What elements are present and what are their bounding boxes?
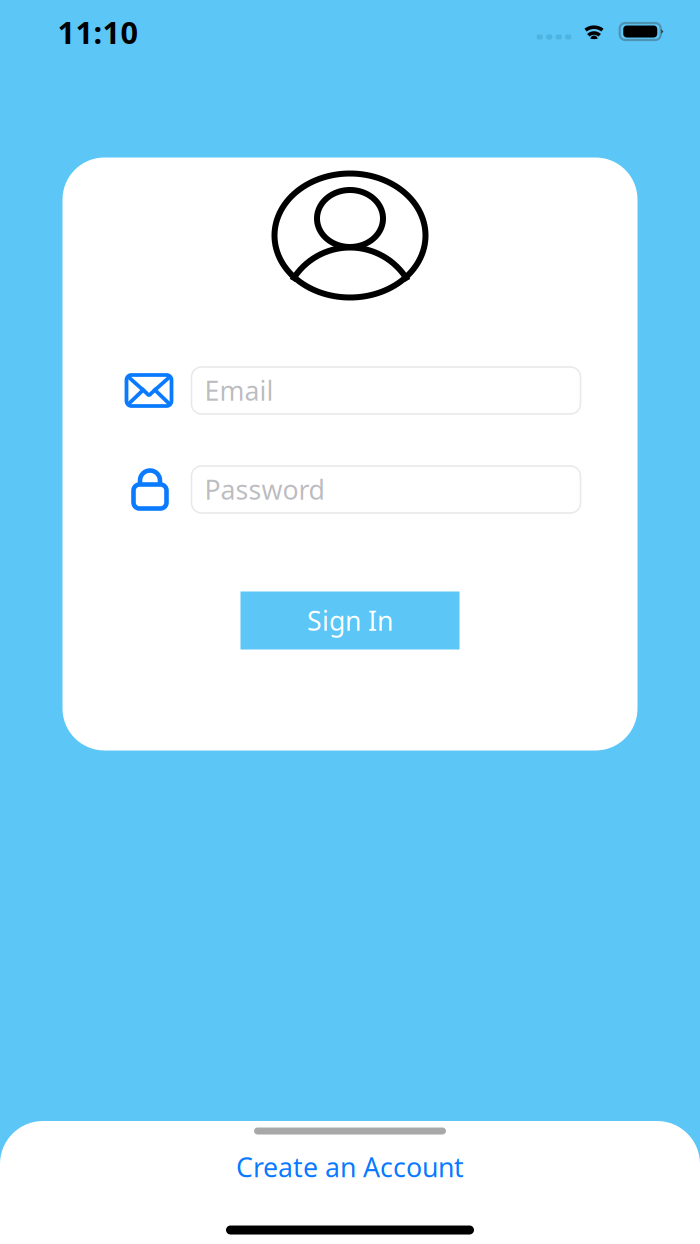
- button[interactable]: Password: [191, 466, 580, 513]
- button[interactable]: Email: [191, 367, 580, 414]
- button[interactable]: Create an Account: [0, 1142, 700, 1192]
- button[interactable]: Sign In: [240, 591, 459, 649]
- staticText: Email: [204, 372, 273, 409]
- staticText: Create an Account: [236, 1149, 464, 1185]
- staticText: Sign In: [307, 602, 393, 639]
- staticText: 11:10: [57, 11, 138, 53]
- staticText: Password: [204, 471, 324, 508]
